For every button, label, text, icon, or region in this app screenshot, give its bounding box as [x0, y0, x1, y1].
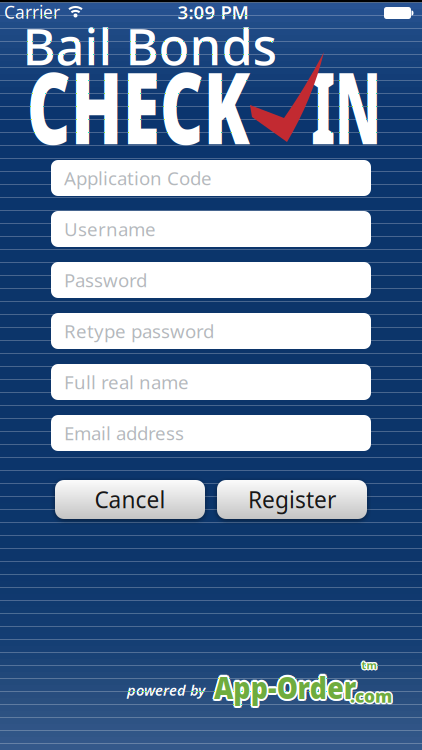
button[interactable]: Application Code — [51, 160, 371, 196]
staticText: Cancel — [94, 484, 165, 514]
staticText: Bail Bonds — [22, 12, 277, 79]
button[interactable]: App-Order.com — [100, 658, 380, 716]
button[interactable]: Full real name — [51, 364, 371, 400]
staticText: Application Code — [64, 166, 212, 190]
staticText: App-Order — [203, 669, 366, 709]
staticText: .com — [351, 684, 393, 707]
staticText: tm — [362, 659, 377, 673]
staticText: tm — [360, 658, 375, 672]
staticText: .com — [350, 684, 392, 707]
button[interactable]: Register — [217, 480, 367, 519]
staticText: App-Order — [206, 667, 369, 707]
staticText: .com — [350, 686, 392, 709]
button[interactable]: Password — [51, 262, 371, 298]
staticText: tm — [361, 657, 376, 671]
staticText: .com — [349, 683, 391, 706]
staticText: tm — [361, 659, 376, 673]
staticText: Full real name — [64, 370, 189, 394]
staticText: IN — [283, 40, 408, 171]
button[interactable]: Username — [51, 211, 371, 247]
staticText: .com — [350, 683, 392, 706]
staticText: tm — [361, 657, 376, 671]
staticText: App-Order — [202, 665, 365, 706]
button[interactable]: Email address — [51, 415, 371, 451]
staticText: powered by — [127, 680, 205, 700]
staticText: App-Order — [203, 667, 366, 707]
staticText: tm — [361, 658, 376, 672]
staticText: 3:09 PM — [177, 0, 248, 24]
staticText: tm — [363, 658, 378, 672]
staticText: Username — [64, 217, 156, 241]
staticText: Email address — [64, 421, 184, 445]
staticText: .com — [349, 686, 391, 709]
staticText: tm — [362, 657, 377, 671]
staticText: App-Order — [205, 665, 368, 706]
staticText: CHECK — [0, 40, 301, 171]
staticText: App-Order — [201, 667, 364, 707]
staticText: tm — [361, 659, 376, 673]
staticText: App-Order — [202, 668, 365, 709]
button[interactable]: Retype password — [51, 313, 371, 349]
button[interactable]: Cancel — [55, 480, 205, 519]
staticText: .com — [348, 684, 390, 707]
staticText: Register — [248, 484, 336, 514]
staticText: App-Order — [203, 664, 366, 705]
staticText: .com — [351, 683, 393, 706]
staticText: Retype password — [64, 319, 214, 343]
staticText: Password — [64, 268, 147, 292]
staticText: .com — [351, 686, 393, 709]
staticText: Carrier — [4, 0, 60, 23]
staticText: App-Order — [205, 668, 368, 709]
